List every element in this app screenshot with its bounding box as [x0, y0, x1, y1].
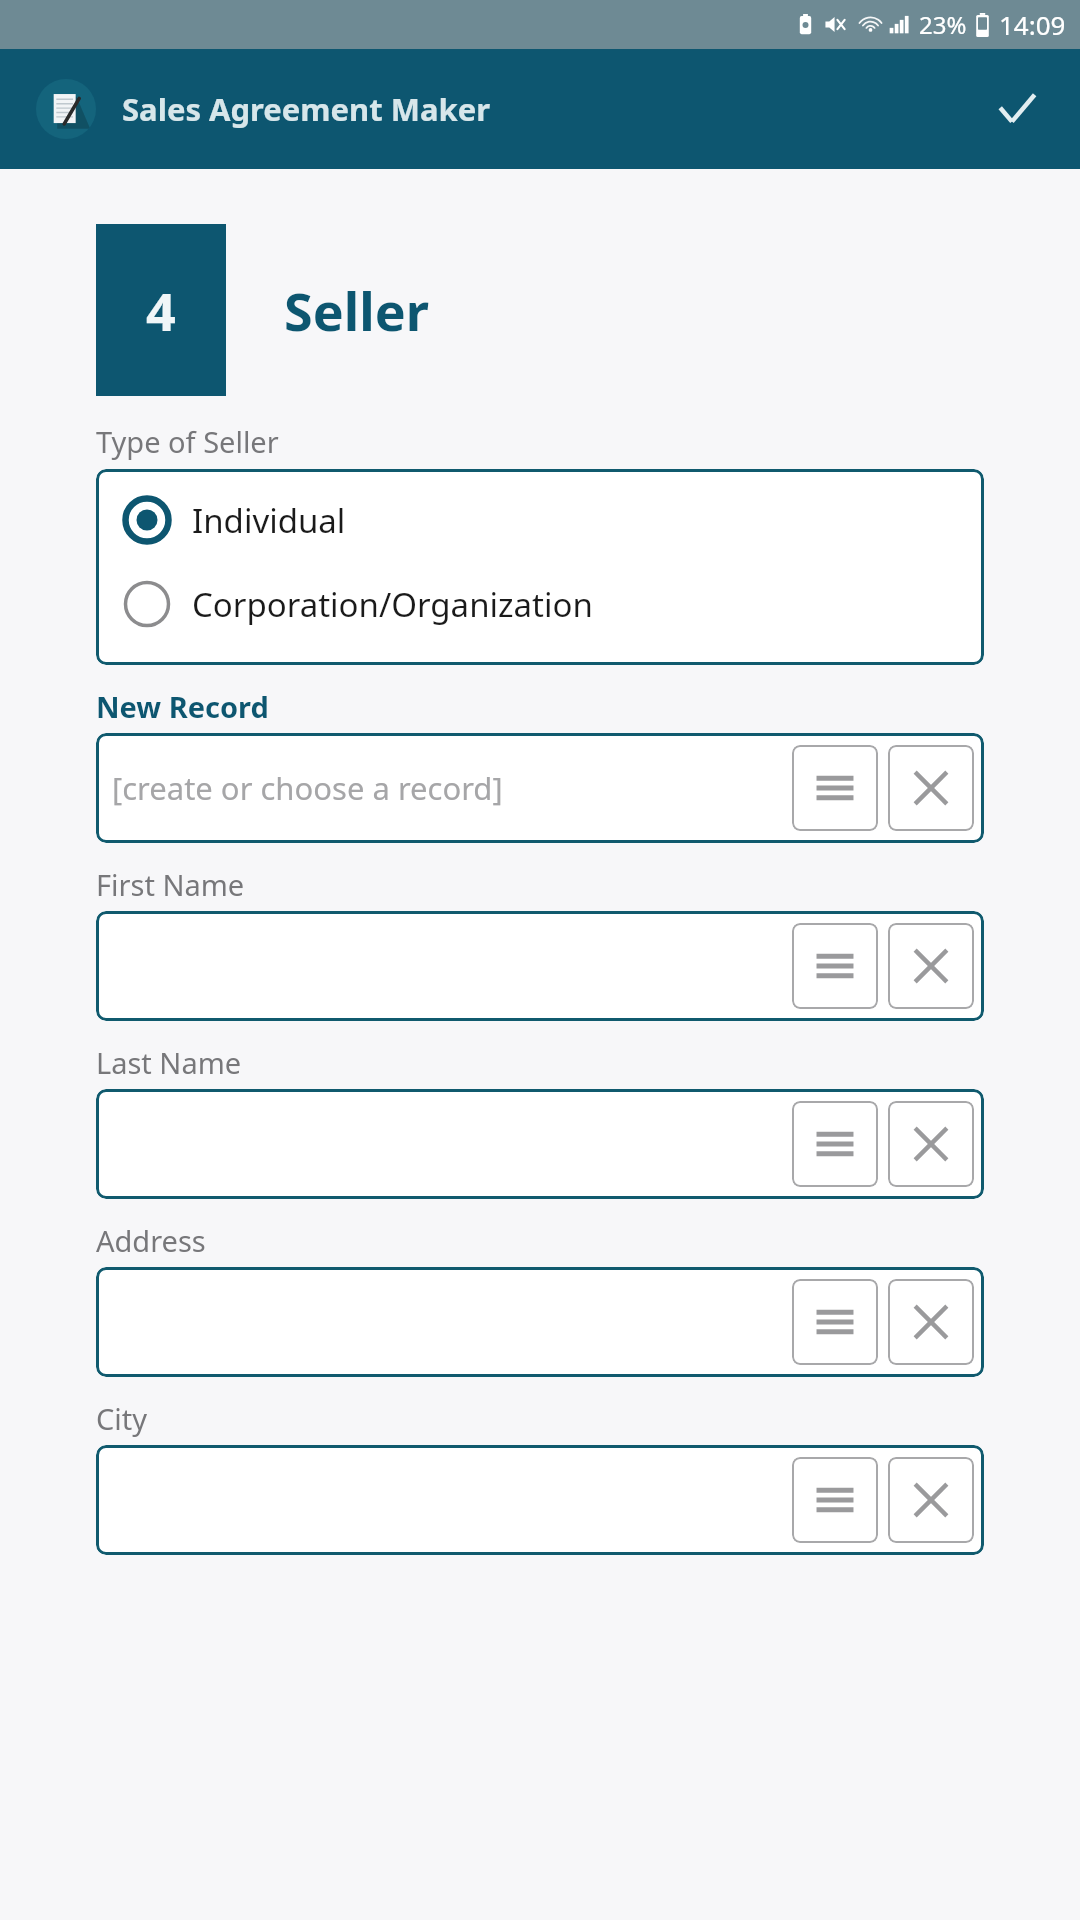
staticText: 23% [919, 8, 967, 41]
button[interactable]: Clear field [888, 745, 974, 831]
button[interactable]: Clear field [888, 1101, 974, 1187]
button[interactable]: Corporation/Organization [96, 571, 984, 637]
staticText: Type of Seller [96, 422, 279, 461]
staticText: Seller [284, 275, 429, 346]
staticText: City [96, 1399, 148, 1438]
button[interactable]: Choose record [792, 1101, 878, 1187]
staticText: Corporation/Organization [192, 582, 593, 627]
button[interactable]: Clear field [888, 1457, 974, 1543]
button[interactable]: Choose record [792, 923, 878, 1009]
staticText: Individual [192, 498, 346, 543]
staticText: Sales Agreement Maker [122, 88, 491, 130]
button[interactable]: Done [984, 76, 1050, 142]
button[interactable]: Choose record [792, 1457, 878, 1543]
button[interactable]: Clear field [888, 923, 974, 1009]
staticText: 4 [146, 275, 176, 346]
staticText: First Name [96, 865, 245, 904]
staticText: New Record [96, 687, 269, 726]
staticText: Last Name [96, 1043, 242, 1082]
button[interactable]: Choose record [792, 1279, 878, 1365]
staticText: 14:09 [999, 7, 1066, 42]
button[interactable]: Choose record [792, 745, 878, 831]
staticText: Address [96, 1221, 206, 1260]
button[interactable]: Clear field [888, 1279, 974, 1365]
button[interactable]: Individual [96, 487, 984, 553]
staticText: [create or choose a record] [112, 767, 503, 809]
